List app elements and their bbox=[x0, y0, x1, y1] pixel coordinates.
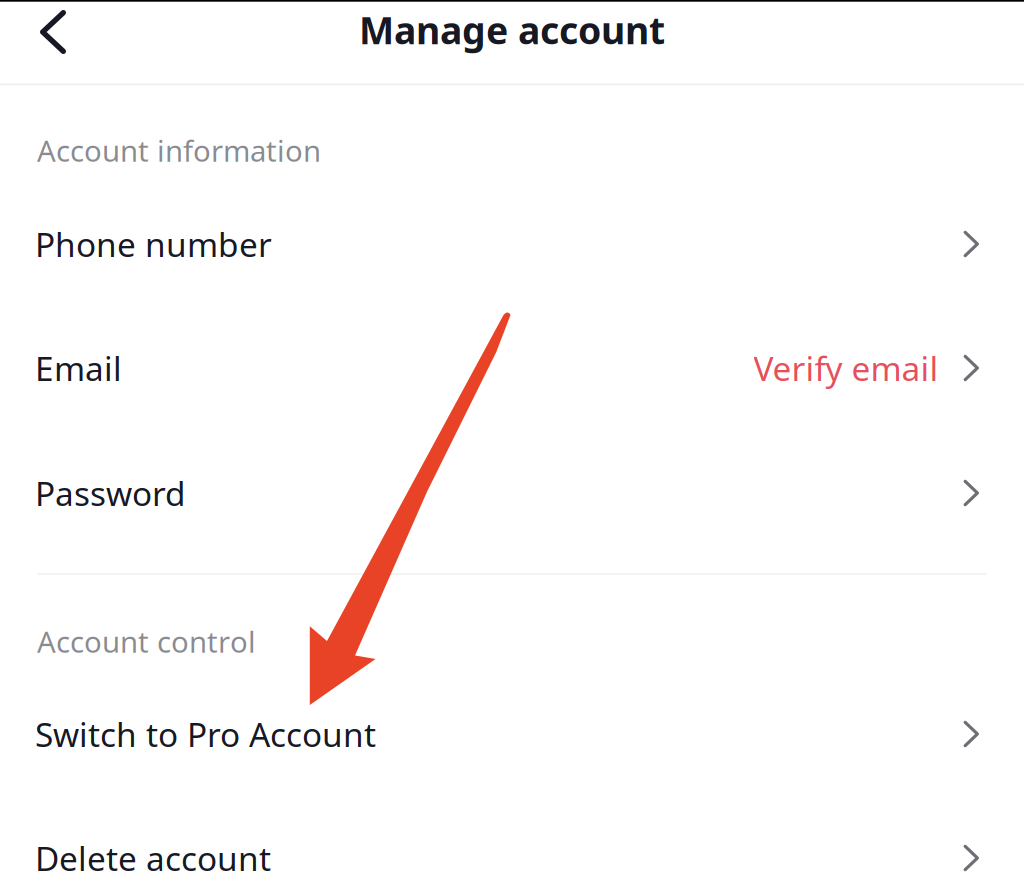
button[interactable]: Delete account bbox=[0, 796, 1024, 889]
staticText: Account control bbox=[37, 622, 256, 661]
staticText: Email bbox=[35, 346, 122, 390]
staticText: Manage account bbox=[359, 5, 665, 55]
button[interactable]: Switch to Pro Account bbox=[0, 672, 1024, 796]
staticText: Delete account bbox=[35, 836, 271, 880]
staticText: Password bbox=[35, 471, 186, 515]
staticText: Switch to Pro Account bbox=[35, 712, 376, 756]
button[interactable]: Phone number bbox=[0, 182, 1024, 306]
button[interactable]: Password bbox=[0, 431, 1024, 555]
staticText: Account information bbox=[37, 131, 321, 170]
staticText: Phone number bbox=[35, 222, 272, 266]
staticText: Verify email bbox=[754, 346, 939, 390]
button[interactable]: Back bbox=[0, 1, 106, 63]
button[interactable]: Email bbox=[0, 306, 1024, 430]
